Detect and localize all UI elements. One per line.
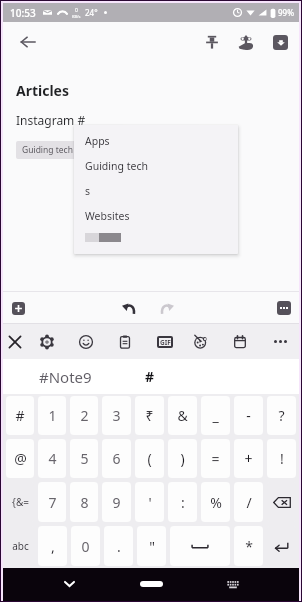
button[interactable]: "	[137, 526, 166, 566]
button[interactable]: Save	[265, 27, 295, 57]
staticText: Instagram #	[16, 112, 86, 128]
button[interactable]: Add	[6, 296, 30, 320]
button[interactable]: 0	[71, 526, 100, 566]
staticText: Articles	[16, 81, 69, 100]
button[interactable]: !	[267, 439, 296, 478]
staticText: 99%	[278, 7, 294, 18]
button[interactable]: @	[6, 439, 34, 478]
button[interactable]	[113, 324, 137, 359]
staticText: _	[212, 406, 219, 425]
staticText: #	[15, 406, 25, 425]
staticText: 6	[112, 449, 121, 468]
button[interactable]	[35, 324, 59, 359]
staticText: Guiding tech	[85, 159, 148, 173]
button[interactable]: .	[104, 526, 133, 566]
button[interactable]: abc	[6, 526, 34, 566]
staticText: +	[244, 449, 253, 468]
button[interactable]: 4	[38, 439, 66, 478]
button[interactable]: Handwriting	[231, 27, 261, 57]
button[interactable]: Switch keyboard	[219, 570, 247, 598]
button[interactable]: 5	[70, 439, 98, 478]
button[interactable]	[170, 526, 230, 566]
staticText: 24°	[85, 7, 98, 18]
button[interactable]: Websites	[74, 203, 238, 228]
button[interactable]: {&=	[6, 482, 34, 522]
button[interactable]: Hide keyboard	[55, 570, 83, 598]
button[interactable]: More options	[268, 324, 292, 359]
button[interactable]: GIF	[153, 324, 177, 359]
staticText: "	[149, 537, 155, 556]
button[interactable]: Guiding tech	[74, 153, 238, 178]
button[interactable]: #Note9	[3, 359, 127, 394]
button[interactable]: %	[201, 482, 230, 522]
staticText: 0	[75, 7, 78, 14]
button[interactable]: )	[168, 439, 197, 478]
button[interactable]	[267, 482, 296, 522]
button[interactable]: More	[272, 296, 296, 320]
button[interactable]: ₹	[135, 396, 164, 435]
button[interactable]: &	[168, 396, 197, 435]
staticText: =	[211, 449, 220, 468]
button[interactable]: 1	[38, 396, 66, 435]
button[interactable]: 6	[102, 439, 131, 478]
staticText: 5	[80, 449, 89, 468]
button[interactable]: Apps	[74, 128, 238, 153]
staticText: *	[245, 537, 253, 556]
button[interactable]: Back	[13, 27, 43, 57]
button[interactable]: Redo	[154, 295, 180, 321]
button[interactable]: #	[127, 359, 173, 394]
button[interactable]	[228, 324, 252, 359]
button[interactable]: 3	[102, 396, 131, 435]
button[interactable]: #	[6, 396, 34, 435]
staticText: KB/s	[72, 14, 81, 19]
button[interactable]: (	[135, 439, 164, 478]
button[interactable]: :	[168, 482, 197, 522]
staticText: GIF	[160, 338, 171, 347]
button[interactable]: -	[234, 396, 263, 435]
button[interactable]	[74, 324, 98, 359]
button[interactable]: ?	[267, 396, 296, 435]
button[interactable]: ,	[38, 526, 67, 566]
button[interactable]: 7	[38, 482, 66, 522]
staticText: #Note9	[39, 367, 92, 387]
staticText: /	[246, 493, 252, 512]
button[interactable]: =	[201, 439, 230, 478]
staticText: Guiding tech	[22, 144, 73, 156]
button[interactable]: /	[234, 482, 263, 522]
button[interactable]: Pin	[197, 27, 227, 57]
staticText: 8	[80, 493, 89, 512]
staticText: @	[14, 449, 27, 468]
button[interactable]: _	[201, 396, 230, 435]
button[interactable]: *	[234, 526, 263, 566]
staticText: 1	[48, 406, 57, 425]
button[interactable]: s	[74, 178, 238, 203]
staticText: 10:53	[10, 6, 36, 20]
button[interactable]: 9	[102, 482, 131, 522]
staticText: ₹	[145, 406, 154, 425]
staticText: 2	[80, 406, 89, 425]
staticText: 7	[48, 493, 57, 512]
staticText: :	[181, 493, 185, 512]
staticText: .	[117, 537, 121, 556]
staticText: '	[148, 493, 152, 512]
button[interactable]: '	[135, 482, 164, 522]
staticText: !	[280, 449, 284, 468]
button[interactable]: Home	[137, 570, 165, 598]
staticText: 4	[48, 449, 57, 468]
button[interactable]: +	[234, 439, 263, 478]
button[interactable]	[188, 324, 212, 359]
staticText: 0	[81, 537, 90, 556]
button[interactable]	[267, 526, 296, 566]
button[interactable]: 2	[70, 396, 98, 435]
staticText: {&=	[12, 495, 29, 509]
staticText: &	[177, 406, 188, 425]
staticText: 9	[112, 493, 121, 512]
button[interactable]: Undo	[116, 295, 142, 321]
button[interactable]	[3, 324, 27, 359]
staticText: Websites	[85, 209, 130, 223]
staticText: -	[246, 406, 251, 425]
staticText: %	[210, 493, 222, 512]
staticText: )	[180, 449, 185, 468]
staticText: ,	[51, 537, 55, 556]
button[interactable]: 8	[70, 482, 98, 522]
